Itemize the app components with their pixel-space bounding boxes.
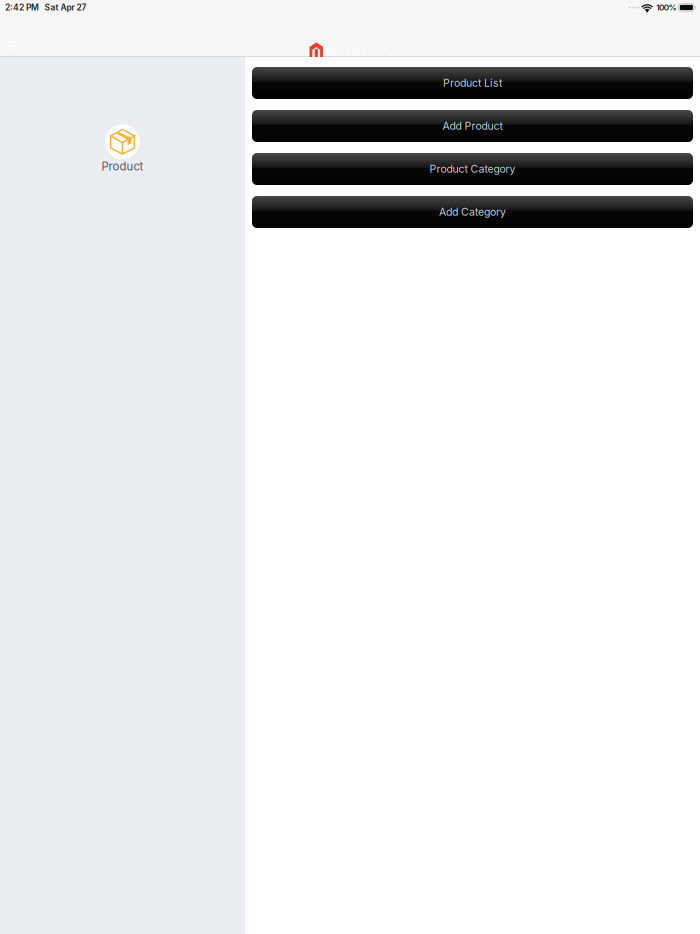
button[interactable]: Product	[74, 124, 170, 173]
staticText: INVENTORY	[326, 45, 389, 57]
button[interactable]: Product Category	[252, 153, 693, 185]
staticText: 2:42 PM	[5, 2, 39, 13]
button[interactable]: Add Category	[252, 196, 693, 228]
staticText: Add Product	[442, 120, 502, 132]
staticText: Add Category	[439, 206, 506, 218]
button[interactable]: Add Product	[252, 110, 693, 142]
staticText: 100%	[656, 2, 676, 12]
staticText: Product	[101, 160, 143, 173]
staticText: Product Category	[429, 163, 515, 175]
staticText: Sat Apr 27	[44, 2, 86, 13]
button[interactable]: Product List	[252, 67, 693, 99]
staticText: Product List	[443, 77, 502, 89]
